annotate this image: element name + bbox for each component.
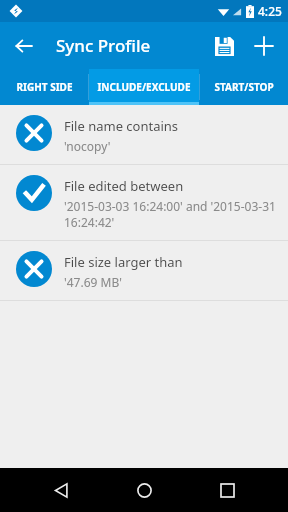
staticText: 4:25 [258,3,282,19]
button[interactable]: START/STOP [200,69,288,105]
button[interactable]: Recent apps [205,468,249,512]
button[interactable]: RIGHT SIDE [0,69,88,105]
button[interactable]: File size larger than [0,241,288,300]
button[interactable]: Back [39,468,83,512]
staticText: '2015-03-03 16:24:00' and '2015-03-31 [64,198,276,214]
staticText: INCLUDE/EXCLUDE [97,80,191,94]
staticText: File edited between [64,177,184,195]
button[interactable]: File name contains [0,105,288,164]
staticText: 'nocopy' [64,138,111,154]
staticText: RIGHT SIDE [16,80,73,94]
staticText: 16:24:42' [64,214,115,230]
staticText: START/STOP [214,80,274,94]
button[interactable]: Save [204,26,244,66]
button[interactable]: Back [6,28,42,64]
button[interactable]: INCLUDE/EXCLUDE [89,69,199,105]
button[interactable]: Home [122,468,166,512]
staticText: Sync Profile [56,34,151,57]
staticText: File size larger than [64,253,183,271]
staticText: '47.69 MB' [64,274,122,290]
button[interactable]: Add [244,26,284,66]
staticText: File name contains [64,117,179,135]
button[interactable]: File edited between [0,165,288,240]
